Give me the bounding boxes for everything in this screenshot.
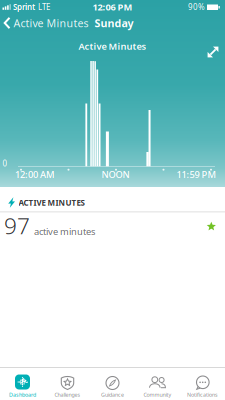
staticText: NOON <box>101 168 129 181</box>
staticText: Active Minutes <box>78 40 146 52</box>
staticText: Notifications <box>187 391 218 398</box>
button[interactable]: Back <box>3 16 88 30</box>
staticText: 11:59 PM <box>176 168 216 181</box>
staticText: ACTIVE MINUTES <box>18 197 84 208</box>
staticText: Community <box>143 391 171 398</box>
button[interactable]: Dashboard <box>0 368 45 400</box>
staticText: Sprint <box>13 2 35 12</box>
button[interactable]: Notifications <box>180 368 225 400</box>
staticText: 0 <box>2 158 7 169</box>
staticText: 90% <box>188 2 205 12</box>
staticText: active minutes <box>34 225 95 238</box>
button[interactable]: Expand chart <box>207 46 219 58</box>
staticText: 12:00 AM <box>15 168 55 181</box>
staticText: Guidance <box>101 391 124 398</box>
staticText: 12:06 PM <box>92 1 132 13</box>
staticText: Active Minutes <box>13 16 88 30</box>
staticText: Dashboard <box>9 391 36 398</box>
staticText: LTE <box>38 2 50 12</box>
staticText: Sunday <box>94 16 133 30</box>
button[interactable]: Community <box>135 368 180 400</box>
button[interactable]: Guidance <box>90 368 135 400</box>
staticText: 97 <box>4 210 30 241</box>
staticText: Challenges <box>54 391 80 398</box>
button[interactable]: Challenges <box>45 368 90 400</box>
